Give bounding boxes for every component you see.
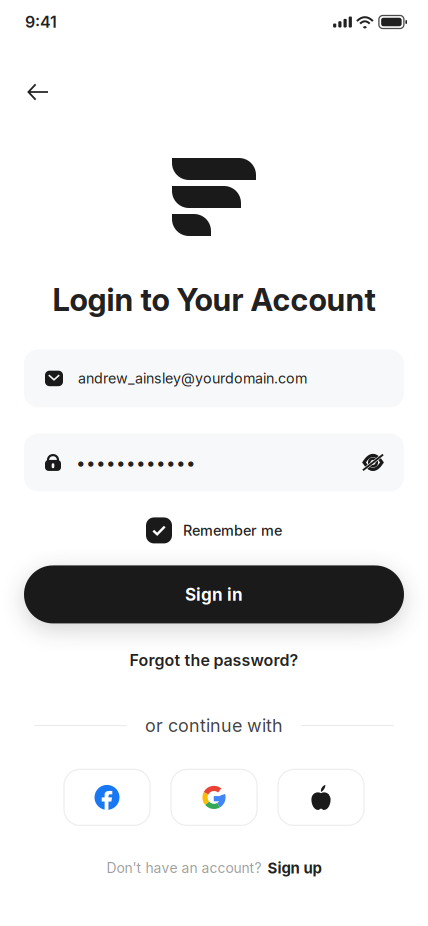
staticText: Don't have an account?	[106, 860, 261, 876]
button[interactable]: Sign in with Facebook	[64, 769, 150, 825]
button[interactable]: Show password	[356, 447, 390, 477]
staticText: 9:41	[25, 12, 57, 32]
button[interactable]: Sign up	[267, 859, 321, 877]
button[interactable]: Forgot the password?	[121, 642, 306, 678]
button[interactable]: Back	[16, 71, 60, 111]
staticText: Sign in	[185, 584, 243, 605]
staticText: Login to Your Account	[52, 281, 375, 318]
button[interactable]: Sign in with Apple	[278, 769, 364, 825]
button[interactable]: Sign in	[24, 565, 404, 623]
staticText: Sign up	[267, 859, 321, 877]
button[interactable]: Remember me	[140, 511, 288, 549]
staticText: Remember me	[183, 522, 282, 539]
button[interactable]: Sign in with Google	[171, 769, 257, 825]
staticText: andrew_ainsley@yourdomain.com	[78, 370, 307, 387]
staticText: ••••••••••••	[76, 452, 196, 473]
staticText: Forgot the password?	[129, 650, 298, 670]
staticText: or continue with	[145, 715, 283, 736]
